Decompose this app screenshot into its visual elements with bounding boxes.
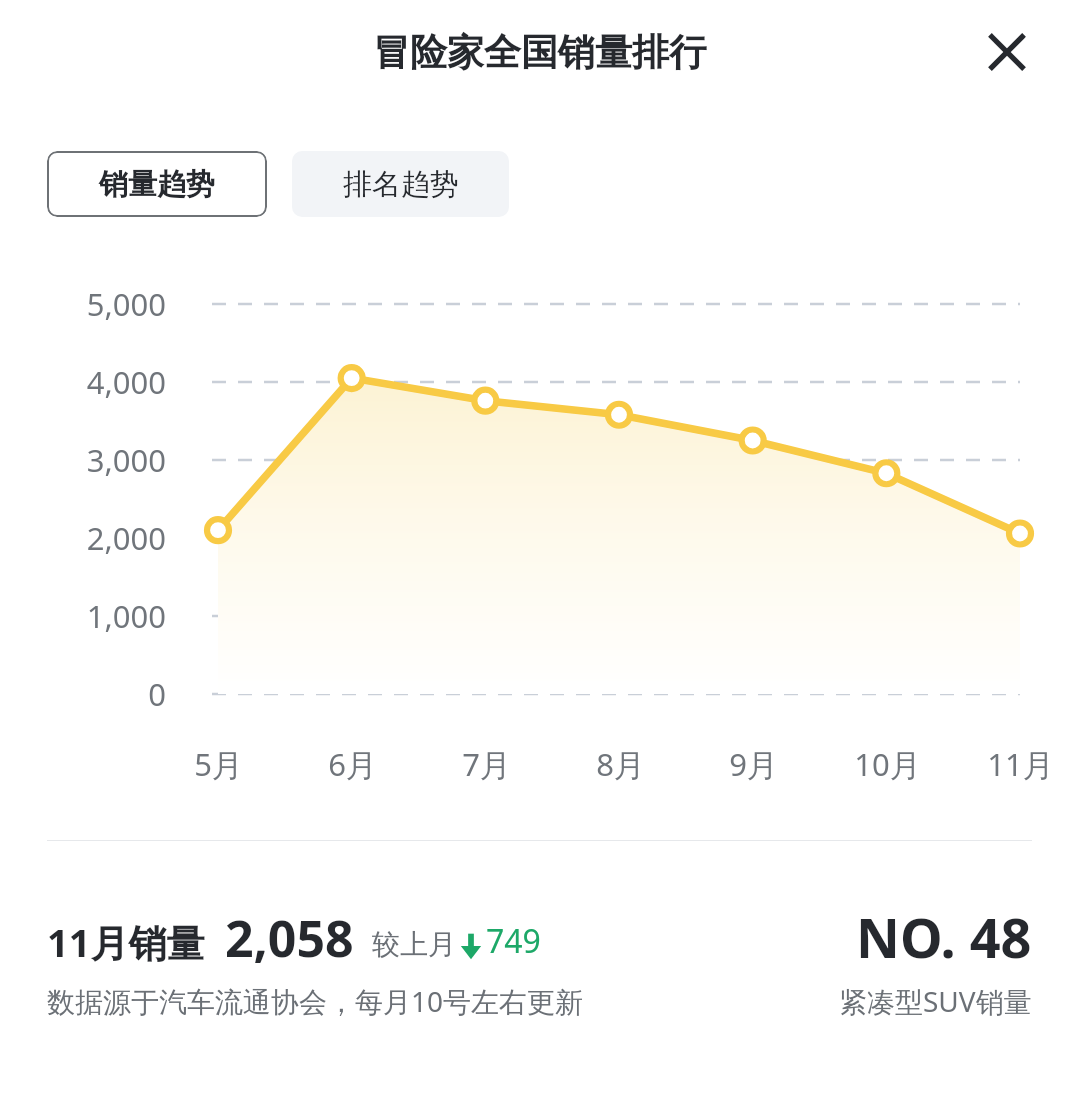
staticText: 紧凑型SUV销量 (839, 982, 1032, 1020)
button[interactable]: 排名趋势 (292, 151, 509, 217)
button[interactable]: Close (975, 20, 1039, 84)
staticText: 5月 (194, 743, 243, 785)
staticText: 4,000 (86, 361, 166, 403)
staticText: 排名趋势 (343, 166, 459, 203)
staticText: 2,058 (225, 904, 354, 972)
staticText: 11月 (987, 743, 1054, 785)
staticText: 6月 (328, 743, 377, 785)
staticText: 数据源于汽车流通协会，每月10号左右更新 (47, 982, 584, 1020)
staticText: 1,000 (86, 595, 166, 637)
staticText: 3,000 (86, 439, 166, 481)
staticText: 0 (148, 673, 166, 715)
staticText: NO. 48 (856, 900, 1032, 974)
staticText: 7月 (462, 743, 511, 785)
staticText: 5,000 (86, 283, 166, 325)
staticText: 9月 (729, 743, 778, 785)
button[interactable]: 销量趋势 (47, 151, 267, 217)
staticText: 销量趋势 (99, 166, 215, 203)
staticText: 冒险家全国销量排行 (373, 29, 706, 76)
staticText: 较上月 (372, 927, 456, 962)
staticText: 749 (486, 919, 541, 963)
staticText: 11月销量 (47, 916, 205, 968)
staticText: 10月 (854, 743, 921, 785)
staticText: 8月 (596, 743, 645, 785)
staticText: 2,000 (86, 517, 166, 559)
